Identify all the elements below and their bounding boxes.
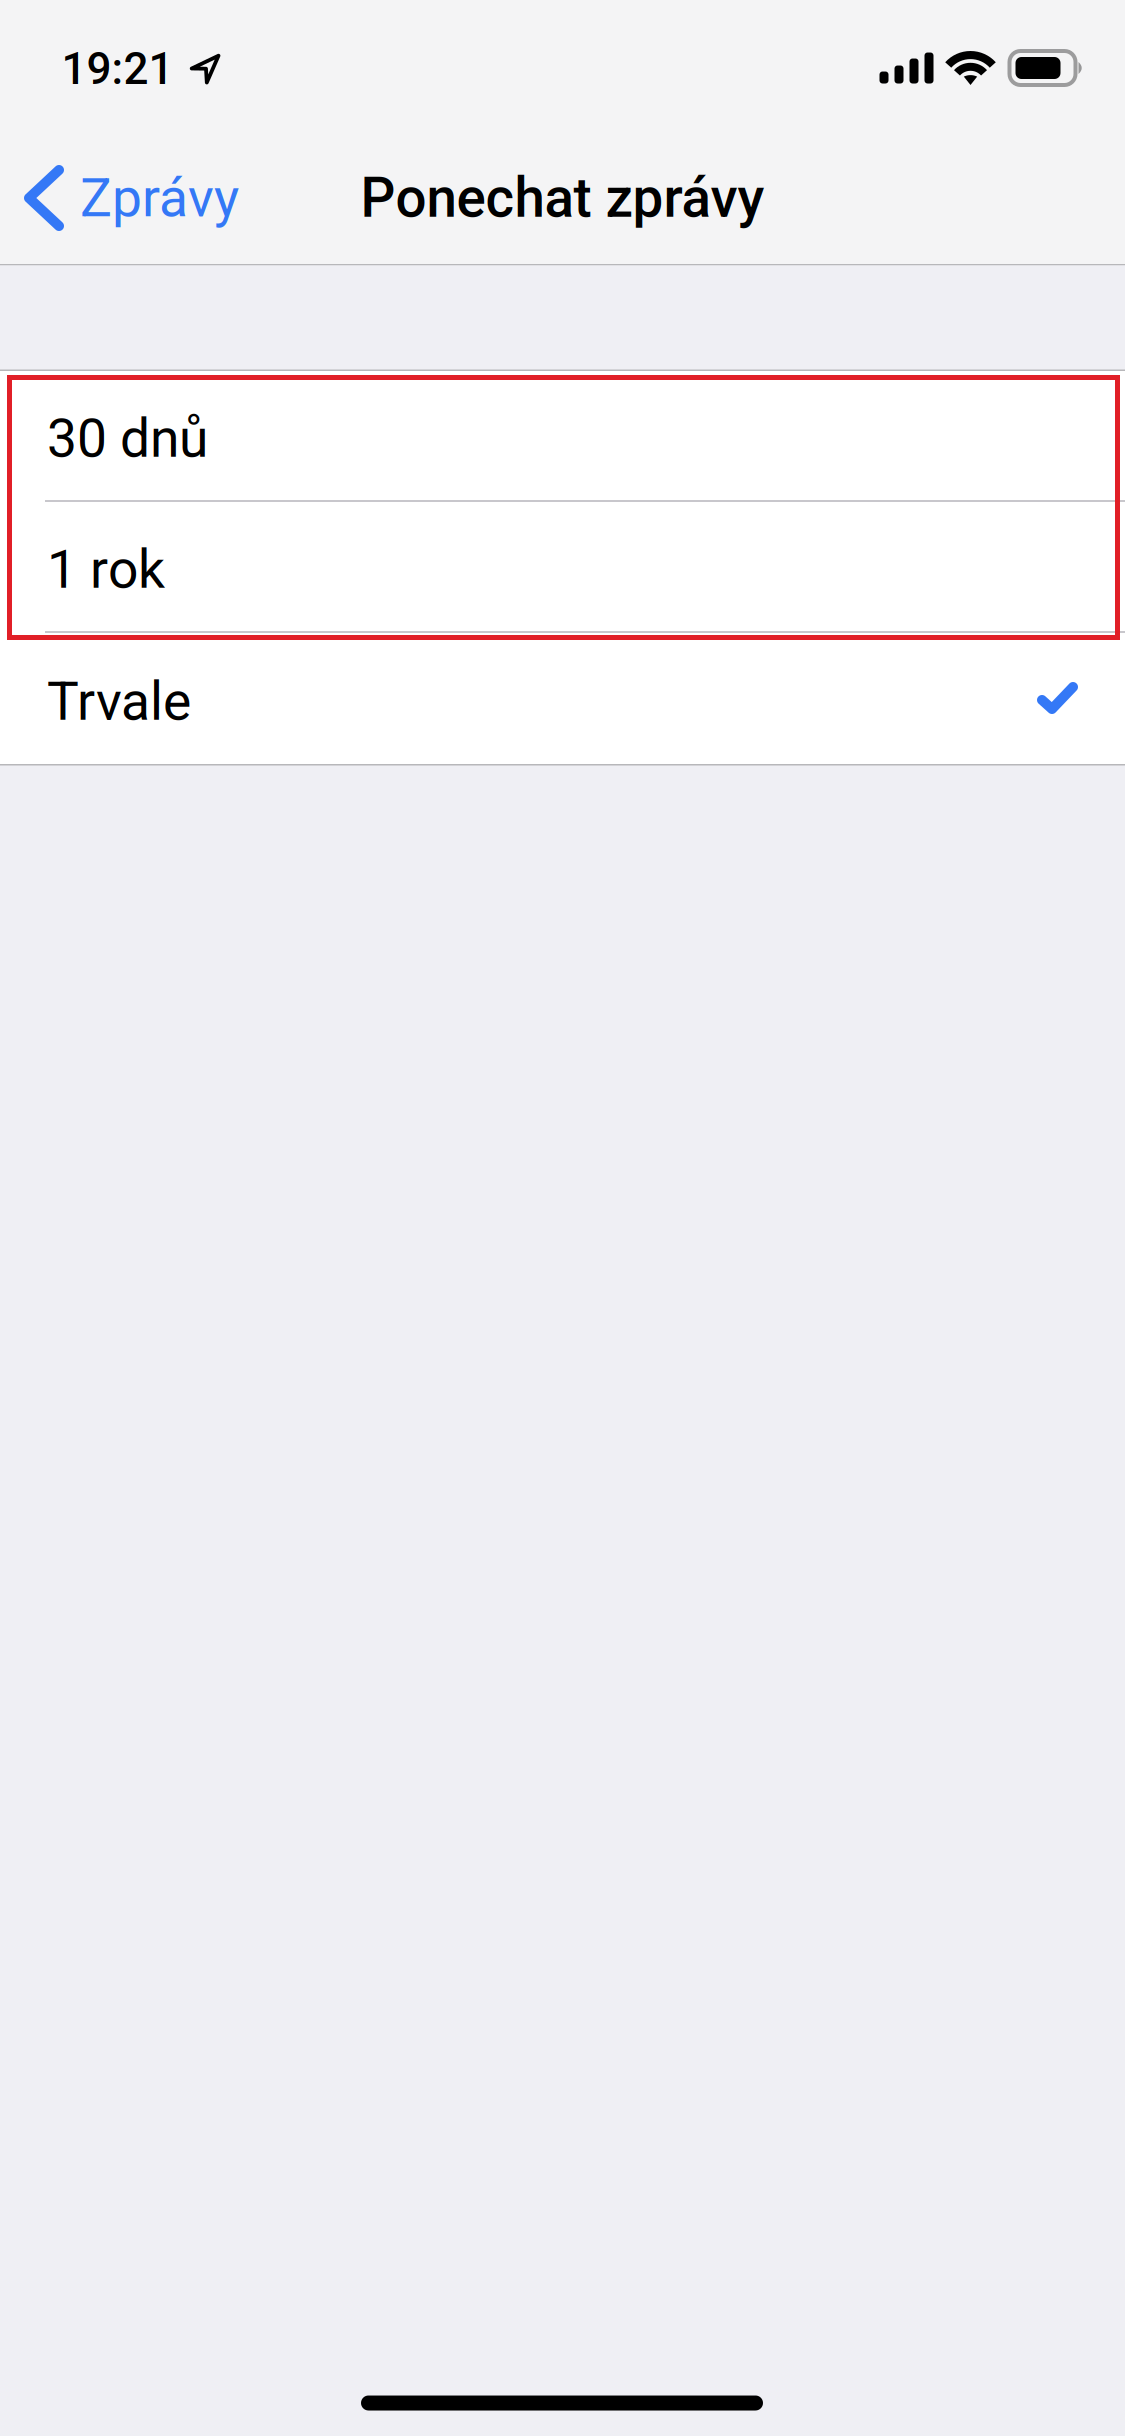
staticText: Zprávy: [80, 167, 239, 229]
button[interactable]: 30 dnů: [0, 371, 1125, 502]
staticText: 30 dnů: [47, 407, 208, 470]
staticText: Trvale: [47, 670, 191, 733]
staticText: 1 rok: [47, 538, 165, 601]
button[interactable]: Trvale: [0, 633, 1125, 764]
staticText: Ponechat zprávy: [360, 166, 764, 230]
staticText: 19:21: [61, 43, 173, 95]
button[interactable]: Zprávy: [0, 132, 269, 264]
button[interactable]: 1 rok: [0, 502, 1125, 633]
